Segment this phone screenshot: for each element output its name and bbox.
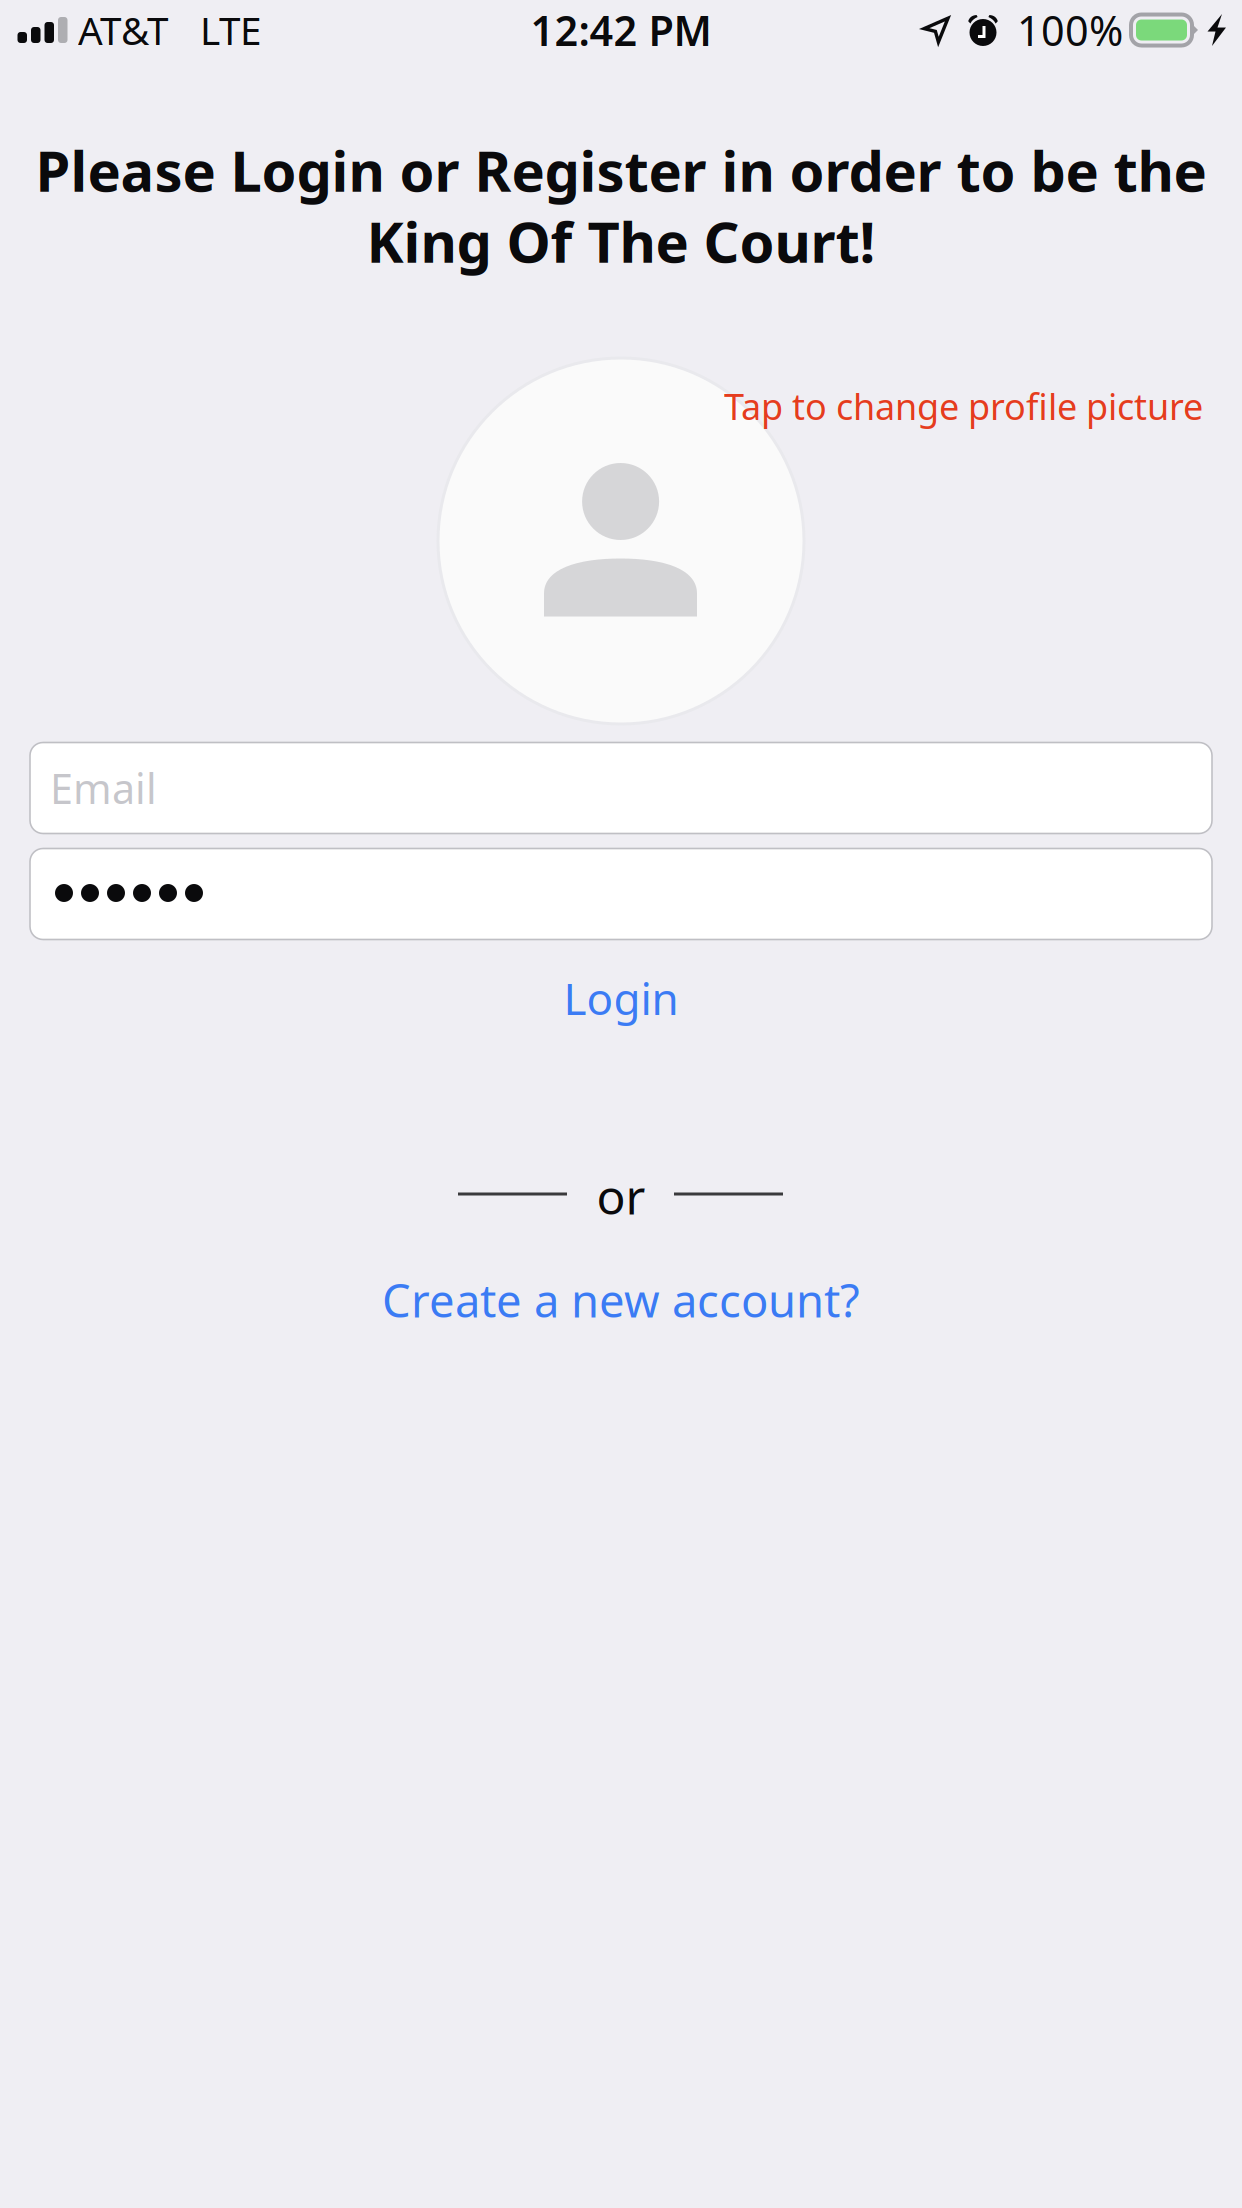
staticText: Email — [50, 761, 157, 815]
staticText: Please Login or Register in order to be … — [35, 133, 1206, 207]
staticText: 12:42 PM — [530, 3, 711, 57]
staticText: 100% — [1017, 3, 1123, 57]
staticText: Login — [563, 969, 678, 1027]
staticText: or — [596, 1164, 645, 1228]
button[interactable]: Create a new account? — [0, 1256, 1242, 1344]
staticText: AT&T — [78, 4, 168, 56]
button[interactable]: Login — [0, 954, 1242, 1042]
button[interactable]: Tap to change profile picture — [0, 369, 1203, 443]
staticText: Tap to change profile picture — [724, 382, 1203, 430]
staticText: Create a new account? — [382, 1270, 860, 1330]
staticText: King Of The Court! — [366, 204, 875, 278]
staticText: LTE — [200, 4, 261, 56]
button[interactable]: Change profile picture — [436, 356, 805, 725]
